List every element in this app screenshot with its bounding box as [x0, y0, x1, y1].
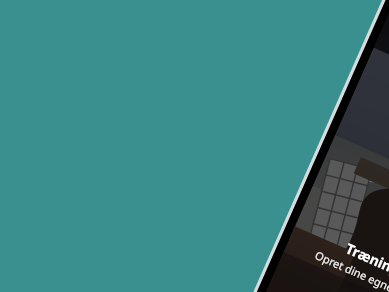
- button[interactable]: [0, 0, 389, 292]
